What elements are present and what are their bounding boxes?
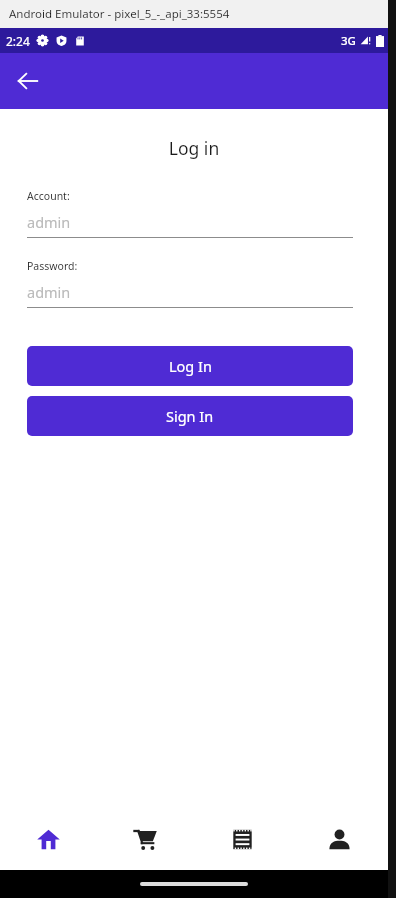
button[interactable]: Home (0, 808, 97, 870)
staticText: admin (27, 212, 71, 232)
button[interactable]: Log In (27, 346, 353, 386)
staticText: 3G (341, 33, 356, 49)
staticText: admin (27, 282, 71, 302)
staticText: 2:24 (6, 33, 30, 49)
staticText: Account: (27, 189, 70, 203)
staticText: Log in (0, 136, 388, 160)
button[interactable]: Sign In (27, 396, 353, 436)
staticText: Android Emulator - pixel_5_-_api_33:5554 (9, 6, 230, 22)
staticText: Password: (27, 259, 78, 273)
staticText: Log In (169, 356, 212, 376)
button[interactable]: Cart (97, 808, 194, 870)
button[interactable]: Orders (194, 808, 291, 870)
staticText: Sign In (166, 406, 214, 426)
button[interactable]: Back (4, 57, 52, 105)
button[interactable]: Profile (291, 808, 388, 870)
